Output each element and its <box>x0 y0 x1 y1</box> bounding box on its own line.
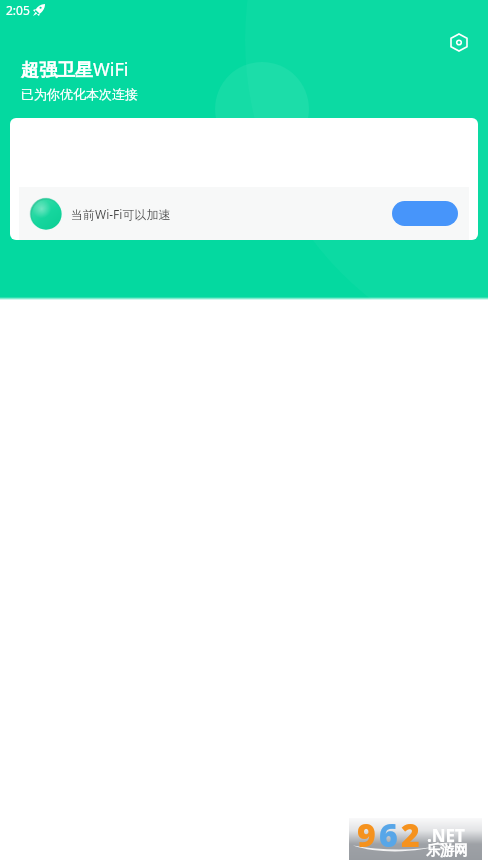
staticText: 2 <box>401 813 420 851</box>
staticText: 超强卫星WiFi <box>21 57 129 82</box>
staticText: 9 <box>357 813 376 851</box>
button[interactable]: 当前Wi-Fi可以加速 <box>19 187 469 240</box>
button[interactable]: Accelerate <box>392 201 458 226</box>
staticText: 已为你优化本次连接 <box>21 86 138 102</box>
staticText: 乐游网 <box>426 842 468 860</box>
staticText: 2:05 <box>6 2 30 18</box>
button[interactable]: Settings <box>447 30 471 54</box>
staticText: 当前Wi-Fi可以加速 <box>71 206 171 222</box>
staticText: .NET <box>427 824 465 847</box>
staticText: 6 <box>379 813 398 851</box>
